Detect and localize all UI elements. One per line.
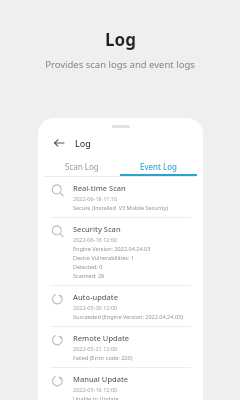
staticText: Log (75, 137, 91, 149)
staticText: 2022-06-16 12:00 (73, 236, 118, 243)
staticText: Remote Update (73, 333, 130, 343)
staticText: Manual Update (73, 374, 129, 384)
staticText: Scanned: 28 (73, 272, 105, 279)
staticText: Log (105, 28, 136, 51)
button[interactable]: Scan Log (44, 156, 120, 176)
button[interactable]: Remote Update (44, 327, 197, 368)
button[interactable]: Event Log (120, 156, 197, 176)
button[interactable]: Back (52, 136, 66, 150)
staticText: Unable to Update (73, 395, 119, 400)
staticText: Device Vulnerabilities: 1 (73, 254, 135, 261)
staticText: 2022-05-21 12:00 (73, 345, 118, 352)
staticText: 2022-05-30 12:00 (73, 304, 118, 311)
button[interactable]: Security Scan (44, 218, 197, 286)
staticText: Scan Log (65, 161, 99, 172)
staticText: 2022-05-16 12:00 (73, 386, 118, 393)
staticText: Provides scan logs and event logs (45, 58, 195, 71)
staticText: Secure (Installed V3 Mobile Security) (73, 204, 168, 211)
staticText: 2022-06-18 11:16 (73, 195, 118, 202)
staticText: Detected: 0 (73, 263, 103, 270)
button[interactable]: Auto-update (44, 286, 197, 327)
staticText: Succeeded (Engine Version: 2022.04.24.03… (73, 313, 183, 320)
staticText: Auto-update (73, 292, 118, 302)
staticText: Engine Version: 2022.04.24.03 (73, 245, 151, 252)
staticText: Security Scan (73, 224, 121, 234)
staticText: Event Log (140, 161, 177, 172)
button[interactable]: Manual Update (44, 368, 197, 400)
staticText: Real-time Scan (73, 183, 126, 193)
staticText: Failed (Error code: 220) (73, 354, 133, 361)
button[interactable]: Real-time Scan (44, 177, 197, 218)
